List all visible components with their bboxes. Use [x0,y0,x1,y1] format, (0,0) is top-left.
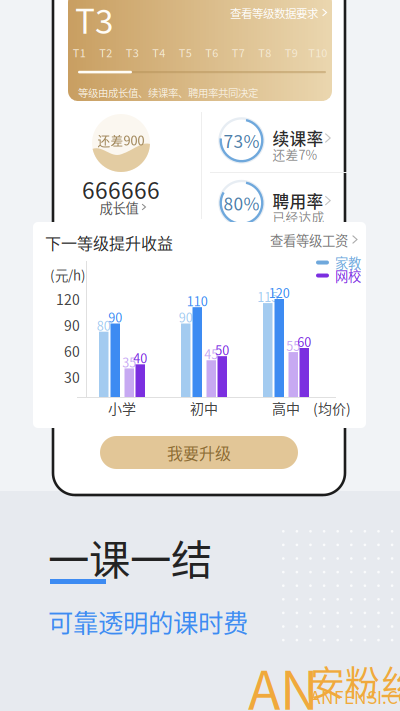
staticText: T1 [73,45,86,60]
staticText: 666666 [82,173,160,205]
staticText: 已经达成 [272,208,324,226]
staticText: 查看等级数据要求 [230,5,318,21]
staticText: T9 [285,45,298,60]
staticText: 90 [108,308,122,326]
staticText: 120 [269,283,290,302]
staticText: 90 [64,315,80,335]
staticText: 成长值 [99,198,138,217]
staticText: 查看等级工资 [270,230,348,250]
staticText: 高中 [272,398,300,418]
staticText: 家教 [335,253,361,272]
staticText: 可靠透明的课时费 [48,603,248,640]
staticText: 还差900 [97,131,144,149]
staticText: 网校 [335,266,361,285]
staticText: T2 [99,45,112,60]
button[interactable]: 还差900 [55,104,187,220]
staticText: T6 [205,45,218,60]
staticText: 120 [56,289,80,309]
staticText: 等级由成长值、续课率、聘用率共同决定 [78,85,258,100]
staticText: 下一等级提升收益 [45,231,173,254]
staticText: AN [248,648,319,711]
button[interactable]: 查看等级工资 [270,232,358,248]
button[interactable]: 73% [203,112,347,172]
staticText: 安粉丝 [310,656,400,706]
staticText: ANFENSI.COM [310,684,400,709]
staticText: 110 [187,291,208,310]
staticText: T8 [258,45,271,60]
staticText: (元/h) [50,265,86,284]
staticText: 60 [297,332,311,351]
staticText: 初中 [190,398,218,418]
staticText: 115 [257,287,278,306]
staticText: T3 [75,0,114,43]
staticText: T7 [232,45,245,60]
staticText: T5 [179,45,192,60]
staticText: 73% [223,128,259,153]
staticText: 30 [64,367,80,387]
staticText: (均价) [313,398,351,418]
staticText: 35 [122,353,136,371]
staticText: 聘用率 [272,189,323,213]
staticText: 40 [133,349,147,367]
staticText: T3 [126,45,139,60]
staticText: 60 [64,341,80,361]
staticText: 我要升级 [167,441,231,464]
staticText: 续课率 [272,126,323,150]
staticText: 80% [223,190,259,216]
staticText: 小学 [108,398,136,418]
staticText: 还差7% [272,145,317,163]
button[interactable]: 查看等级数据要求 [230,5,327,21]
staticText: T4 [152,45,165,60]
button[interactable]: 我要升级 [100,436,298,469]
staticText: 90 [179,308,193,326]
staticText: 50 [215,340,229,359]
staticText: T10 [308,45,327,60]
button[interactable]: 80% [203,175,347,235]
staticText: 80 [97,316,111,334]
staticText: 45 [204,345,218,363]
staticText: 一课一结 [48,527,212,587]
staticText: 55 [286,336,300,355]
